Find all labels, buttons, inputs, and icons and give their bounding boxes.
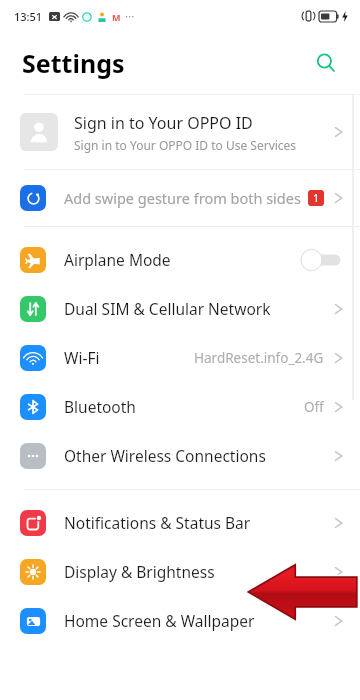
button[interactable]: Notifications & Status Bar xyxy=(0,498,360,547)
staticText: Wi-Fi xyxy=(64,347,194,368)
button[interactable]: Other Wireless Connections xyxy=(0,431,360,480)
staticText: Sign in to Your OPPO ID to Use Services xyxy=(74,137,297,153)
button[interactable]: Bluetooth xyxy=(0,382,360,431)
staticText: Add swipe gesture from both sides xyxy=(64,188,308,208)
staticText: ⋯ xyxy=(125,11,135,23)
staticText: M xyxy=(112,11,121,23)
button[interactable]: Search xyxy=(306,43,346,83)
button[interactable]: Home Screen & Wallpaper xyxy=(0,596,360,645)
button[interactable]: Sign in to Your OPPO ID xyxy=(0,95,360,169)
staticText: Display & Brightness xyxy=(64,561,334,582)
staticText: Notifications & Status Bar xyxy=(64,512,334,533)
staticText: Dual SIM & Cellular Network xyxy=(64,298,334,319)
staticText: Bluetooth xyxy=(64,396,304,417)
button[interactable]: Dual SIM & Cellular Network xyxy=(0,284,360,333)
staticText: HardReset.info_2.4G xyxy=(194,349,324,367)
button[interactable]: Display & Brightness xyxy=(0,547,360,596)
button[interactable]: Airplane Mode xyxy=(0,235,360,284)
staticText: Airplane Mode xyxy=(64,249,300,270)
staticText: Settings xyxy=(22,46,125,80)
button[interactable]: Airplane Mode toggle xyxy=(300,249,344,271)
staticText: 13:51 xyxy=(14,9,43,24)
staticText: 1 xyxy=(313,191,319,205)
staticText: Other Wireless Connections xyxy=(64,445,334,466)
button[interactable]: Wi-Fi xyxy=(0,333,360,382)
staticText: Home Screen & Wallpaper xyxy=(64,610,334,631)
staticText: Sign in to Your OPPO ID xyxy=(74,112,253,134)
button[interactable]: Add swipe gesture from both sides xyxy=(0,170,360,226)
staticText: Off xyxy=(304,398,324,416)
